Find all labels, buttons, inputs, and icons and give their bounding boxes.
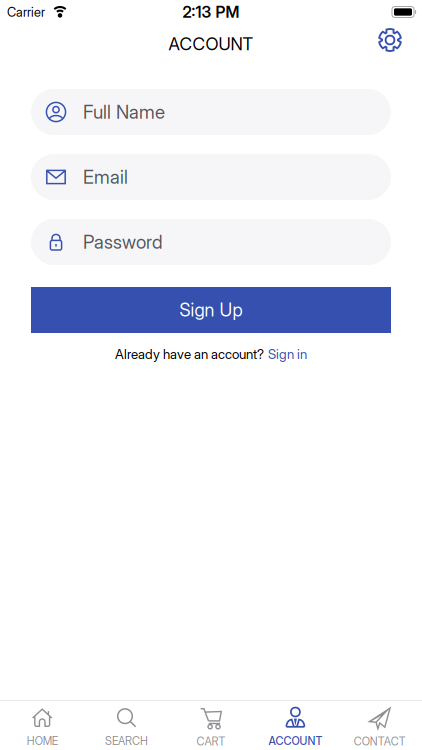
- staticText: Carrier: [7, 4, 45, 20]
- staticText: Full Name: [83, 101, 165, 123]
- staticText: CART: [196, 735, 225, 748]
- staticText: Email: [83, 166, 128, 188]
- staticText: HOME: [27, 734, 58, 748]
- button[interactable]: SEARCH: [84, 701, 169, 750]
- button[interactable]: ACCOUNT: [253, 701, 338, 750]
- button[interactable]: Password: [31, 219, 391, 265]
- button[interactable]: Sign Up: [31, 287, 391, 333]
- staticText: SEARCH: [105, 734, 148, 748]
- staticText: CONTACT: [354, 735, 406, 748]
- button[interactable]: HOME: [0, 701, 84, 750]
- staticText: ACCOUNT: [168, 33, 253, 54]
- staticText: ACCOUNT: [268, 734, 322, 748]
- button[interactable]: Email: [31, 154, 391, 200]
- button[interactable]: CONTACT: [338, 701, 422, 750]
- button[interactable]: Full Name: [31, 89, 391, 135]
- button[interactable]: Sign in: [268, 346, 307, 362]
- staticText: 2:13 PM: [182, 2, 239, 21]
- button[interactable]: CART: [169, 701, 253, 750]
- staticText: Already have an account?: [115, 346, 264, 362]
- button[interactable]: [378, 28, 422, 52]
- staticText: Password: [83, 231, 163, 253]
- staticText: Sign Up: [179, 299, 242, 321]
- staticText: Sign in: [268, 346, 307, 362]
